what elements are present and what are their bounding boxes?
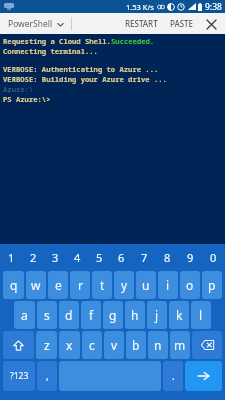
staticText: r <box>78 277 83 293</box>
button[interactable]: 4 <box>66 244 88 270</box>
staticText: Connecting terminal... <box>3 46 98 56</box>
button[interactable]: RESTART <box>122 15 161 32</box>
staticText: , <box>46 369 49 383</box>
staticText: t <box>100 277 105 293</box>
staticText: p <box>208 277 216 293</box>
staticText: . <box>172 369 175 383</box>
button[interactable]: m <box>170 331 190 359</box>
button[interactable]: w <box>26 271 46 299</box>
button[interactable]: u <box>136 271 156 299</box>
button[interactable]: a <box>14 301 35 329</box>
staticText: u <box>142 277 150 293</box>
staticText: z <box>44 337 50 353</box>
staticText: 6 <box>118 250 125 265</box>
button[interactable]: l <box>191 301 211 329</box>
button[interactable]: 0 <box>202 244 225 270</box>
button[interactable]: s <box>37 301 57 329</box>
button[interactable]: f <box>81 301 101 329</box>
button[interactable]: c <box>82 331 102 359</box>
button[interactable]: i <box>158 271 178 299</box>
button[interactable]: y <box>114 271 134 299</box>
button[interactable]: d <box>59 301 79 329</box>
button[interactable]: 9 <box>179 244 202 270</box>
staticText: 1 <box>8 250 15 265</box>
button[interactable]: ?123 <box>3 361 35 391</box>
staticText: c <box>89 337 95 353</box>
button[interactable]: 5 <box>88 244 110 270</box>
button[interactable]: k <box>169 301 189 329</box>
staticText: ?123 <box>10 370 29 382</box>
staticText: d <box>65 307 73 323</box>
staticText: f <box>89 307 94 323</box>
button[interactable]: j <box>147 301 167 329</box>
button[interactable]: o <box>180 271 200 299</box>
button[interactable]: PowerShell <box>6 16 66 32</box>
button[interactable]: z <box>36 331 57 359</box>
staticText: VERBOSE: Building your Azure drive ... <box>3 74 167 84</box>
staticText: PowerShell <box>8 18 53 30</box>
button[interactable]: Shift <box>3 331 34 359</box>
button[interactable]: v <box>104 331 124 359</box>
button[interactable]: Enter <box>185 361 222 391</box>
button[interactable]: n <box>148 331 168 359</box>
staticText: a <box>21 307 28 323</box>
staticText: s <box>44 307 50 323</box>
button[interactable]: Backspace <box>192 331 222 359</box>
button[interactable]: r <box>70 271 90 299</box>
staticText: 9:38 <box>205 1 222 13</box>
staticText: VERBOSE: Authenticating to Azure ... <box>3 64 159 74</box>
staticText: o <box>186 277 194 293</box>
button[interactable]: . <box>163 361 183 391</box>
staticText: Requesting a Cloud Shell. <box>3 36 111 46</box>
staticText: g <box>109 307 117 323</box>
staticText: h <box>131 307 139 323</box>
staticText: PS Azure:\> <box>3 94 51 104</box>
button[interactable]: g <box>103 301 123 329</box>
staticText: l <box>199 307 203 323</box>
button[interactable]: h <box>125 301 145 329</box>
staticText: n <box>154 337 162 353</box>
staticText: i <box>166 277 170 293</box>
staticText: 5 <box>96 250 103 265</box>
button[interactable]: q <box>3 271 24 299</box>
button[interactable]: Close <box>203 16 219 32</box>
staticText: 2 <box>30 250 37 265</box>
button[interactable]: 1 <box>0 244 22 270</box>
button[interactable]: , <box>37 361 57 391</box>
staticText: 3 <box>52 250 59 265</box>
staticText: 9 <box>187 250 194 265</box>
staticText: 0 <box>210 250 217 265</box>
staticText: v <box>111 337 118 353</box>
staticText: k <box>176 307 183 323</box>
staticText: w <box>31 277 41 293</box>
staticText: x <box>66 337 73 353</box>
staticText: m <box>174 337 186 353</box>
staticText: 1.53 K/s <box>126 2 154 12</box>
button[interactable]: 3 <box>44 244 66 270</box>
staticText: RESTART <box>125 18 158 29</box>
staticText: Succeeded. <box>111 36 155 46</box>
button[interactable]: t <box>92 271 112 299</box>
staticText: j <box>155 307 159 323</box>
staticText: b <box>132 337 140 353</box>
button[interactable]: 2 <box>22 244 44 270</box>
staticText: y <box>121 277 128 293</box>
button[interactable]: 7 <box>133 244 156 270</box>
staticText: e <box>55 277 62 293</box>
button[interactable]: e <box>48 271 68 299</box>
staticText: PASTE <box>170 18 194 29</box>
button[interactable]: 6 <box>110 244 133 270</box>
staticText: 8 <box>164 250 171 265</box>
button[interactable]: p <box>202 271 222 299</box>
staticText: 7 <box>141 250 148 265</box>
button[interactable]: 8 <box>156 244 179 270</box>
button[interactable]: b <box>126 331 146 359</box>
button[interactable]: PASTE <box>167 15 197 32</box>
button[interactable]: x <box>59 331 80 359</box>
staticText: q <box>10 277 18 293</box>
staticText: Azure:\ <box>3 84 34 94</box>
staticText: 4 <box>74 250 81 265</box>
